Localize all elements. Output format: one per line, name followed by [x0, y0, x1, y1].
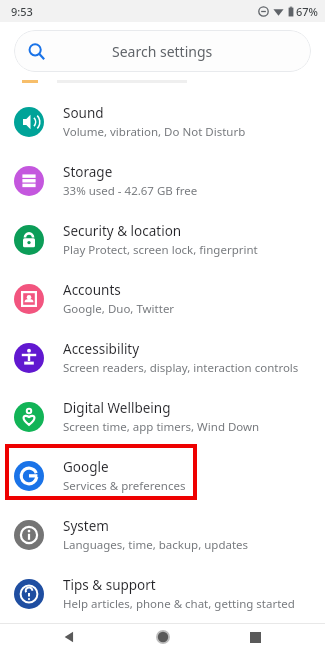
staticText: Accessibility [63, 340, 140, 358]
button[interactable]: Google [0, 446, 325, 505]
staticText: Play Protect, screen lock, fingerprint [63, 242, 258, 258]
staticText: Screen readers, display, interaction con… [63, 360, 299, 376]
staticText: Google, Duo, Twitter [63, 301, 175, 317]
button[interactable]: Tips & support [0, 564, 325, 623]
button[interactable]: Storage [0, 151, 325, 210]
staticText: 67% [296, 4, 318, 19]
button[interactable]: Search settings [14, 30, 311, 72]
button[interactable]: Home [141, 624, 185, 650]
button[interactable]: Back [48, 624, 92, 650]
staticText: Digital Wellbeing [63, 399, 171, 417]
staticText: Screen time, app timers, Wind Down [63, 419, 260, 435]
staticText: Sound [63, 104, 104, 122]
staticText: Search settings [112, 42, 213, 61]
staticText: Tips & support [63, 576, 156, 594]
staticText: Security & location [63, 222, 182, 240]
button[interactable]: Recent apps [233, 624, 277, 650]
staticText: System [63, 517, 109, 535]
button[interactable]: Security & location [0, 210, 325, 269]
staticText: Accounts [63, 281, 121, 299]
button[interactable]: Sound [0, 92, 325, 151]
button[interactable]: Accessibility [0, 328, 325, 387]
staticText: Volume, vibration, Do Not Disturb [63, 124, 246, 140]
staticText: 33% used - 42.67 GB free [63, 183, 198, 199]
staticText: 9:53 [11, 4, 33, 19]
staticText: Google [63, 458, 109, 476]
button[interactable]: Digital Wellbeing [0, 387, 325, 446]
staticText: Languages, time, backup, updates [63, 537, 249, 553]
staticText: Help articles, phone & chat, getting sta… [63, 596, 295, 612]
button[interactable]: System [0, 505, 325, 564]
staticText: Services & preferences [63, 478, 186, 494]
staticText: Storage [63, 163, 113, 181]
button[interactable]: Accounts [0, 269, 325, 328]
